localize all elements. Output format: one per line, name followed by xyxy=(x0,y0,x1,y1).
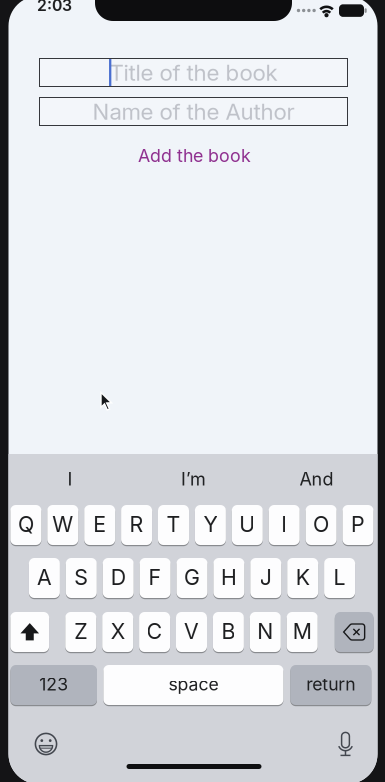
staticText: T xyxy=(166,511,180,537)
staticText: Z xyxy=(74,618,87,644)
staticText: B xyxy=(221,618,235,644)
button[interactable]: I’m xyxy=(138,459,248,499)
staticText: U xyxy=(239,511,255,537)
button[interactable]: return xyxy=(290,665,371,705)
button[interactable]: P xyxy=(342,505,373,545)
button[interactable]: C xyxy=(139,612,170,652)
button[interactable]: Q xyxy=(10,505,41,545)
staticText: I xyxy=(67,468,72,490)
staticText: E xyxy=(93,511,106,537)
button[interactable]: U xyxy=(232,505,263,545)
staticText: H xyxy=(221,564,237,590)
staticText: C xyxy=(147,618,163,644)
staticText: Title of the book xyxy=(109,59,277,86)
button[interactable]: T xyxy=(158,505,189,545)
button[interactable]: B xyxy=(213,612,244,652)
staticText: I xyxy=(281,511,287,537)
staticText: space xyxy=(168,674,218,695)
staticText: M xyxy=(293,618,312,644)
button[interactable]: O xyxy=(306,505,337,545)
staticText: R xyxy=(130,511,144,537)
staticText: Y xyxy=(203,511,217,537)
button[interactable]: A xyxy=(29,558,60,598)
button[interactable]: H xyxy=(213,558,244,598)
button[interactable]: I xyxy=(269,505,300,545)
staticText: G xyxy=(184,564,200,590)
staticText: W xyxy=(52,511,73,537)
staticText: F xyxy=(149,564,162,590)
button[interactable]: S xyxy=(66,558,97,598)
button[interactable]: Y xyxy=(195,505,226,545)
staticText: And xyxy=(299,468,333,490)
button[interactable]: Z xyxy=(65,612,96,652)
button[interactable]: M xyxy=(287,612,318,652)
button[interactable]: space xyxy=(103,665,283,705)
button[interactable]: G xyxy=(176,558,207,598)
staticText: L xyxy=(334,564,346,590)
staticText: Add the book xyxy=(138,145,251,166)
button[interactable]: 123 xyxy=(10,665,97,705)
staticText: 123 xyxy=(39,674,68,695)
staticText: 2:03 xyxy=(37,0,72,15)
button[interactable]: J xyxy=(250,558,281,598)
staticText: O xyxy=(313,511,329,537)
button[interactable]: X xyxy=(102,612,133,652)
button[interactable]: L xyxy=(324,558,355,598)
staticText: K xyxy=(296,564,310,590)
staticText: return xyxy=(306,674,355,695)
staticText: I’m xyxy=(181,468,206,490)
button[interactable]: Add the book xyxy=(84,140,304,170)
button[interactable]: Delete xyxy=(335,612,373,652)
button[interactable]: K xyxy=(287,558,318,598)
button[interactable]: Name of the Author xyxy=(39,97,348,126)
button[interactable]: Dictation xyxy=(323,722,367,766)
button[interactable]: V xyxy=(176,612,207,652)
button[interactable]: I xyxy=(15,459,125,499)
button[interactable]: Title of the book xyxy=(39,58,348,87)
button[interactable]: W xyxy=(47,505,78,545)
staticText: N xyxy=(257,618,273,644)
staticText: S xyxy=(74,564,88,590)
button[interactable]: D xyxy=(103,558,134,598)
staticText: D xyxy=(111,564,126,590)
staticText: Name of the Author xyxy=(92,98,294,125)
staticText: A xyxy=(37,564,52,590)
button[interactable]: R xyxy=(121,505,152,545)
button[interactable]: Emoji xyxy=(24,722,68,766)
staticText: Q xyxy=(18,511,34,537)
button[interactable]: F xyxy=(140,558,171,598)
button[interactable]: And xyxy=(261,459,371,499)
staticText: P xyxy=(351,511,365,537)
staticText: J xyxy=(260,564,272,590)
staticText: V xyxy=(184,618,199,644)
button[interactable]: E xyxy=(84,505,115,545)
button[interactable]: Shift xyxy=(10,612,49,652)
button[interactable]: N xyxy=(250,612,281,652)
staticText: X xyxy=(111,618,125,644)
